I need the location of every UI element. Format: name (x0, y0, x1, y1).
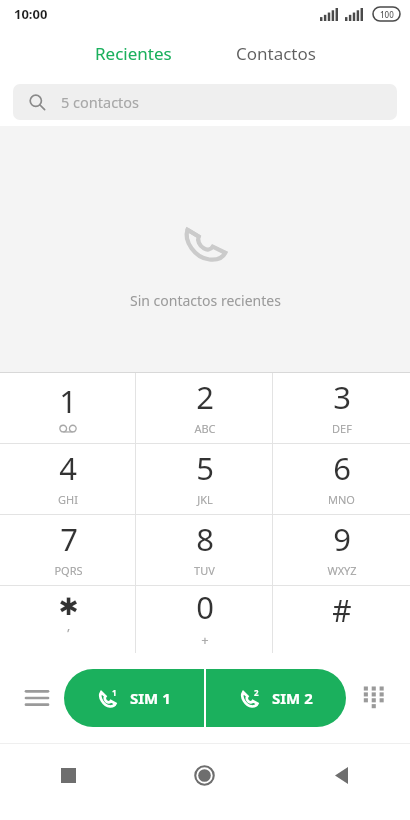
staticText: PQRS (54, 563, 83, 578)
staticText: 2 (196, 376, 214, 418)
staticText: 6 (333, 447, 351, 489)
button[interactable]: Contactos (218, 34, 334, 73)
staticText: 10:00 (14, 5, 48, 23)
staticText: 100 (380, 9, 394, 20)
button[interactable]: 1 (64, 669, 204, 727)
staticText: TUV (194, 563, 215, 578)
button[interactable]: Home (136, 744, 273, 806)
staticText: 5 contactos (61, 92, 140, 112)
staticText: 9 (333, 518, 351, 560)
button[interactable]: Menu (10, 671, 64, 725)
button[interactable]: 8 (136, 515, 273, 585)
staticText: 1 (59, 380, 77, 422)
staticText: 8 (196, 518, 214, 560)
staticText: ’ (67, 624, 70, 642)
button[interactable]: 3 (273, 373, 410, 443)
staticText: 0 (196, 586, 214, 628)
button[interactable]: 2 (206, 669, 346, 727)
button[interactable]: 1 (0, 373, 136, 443)
staticText: 2 (254, 687, 259, 698)
staticText: SIM 2 (272, 688, 313, 708)
button[interactable]: 0 (136, 586, 273, 653)
button[interactable]: 9 (273, 515, 410, 585)
button[interactable]: 2 (136, 373, 273, 443)
button[interactable]: 7 (0, 515, 136, 585)
button[interactable]: 4 (0, 444, 136, 514)
staticText: JKL (197, 492, 213, 507)
staticText: ABC (194, 421, 216, 436)
staticText: SIM 1 (130, 688, 171, 708)
staticText: 5 (196, 447, 214, 489)
staticText: DEF (332, 421, 352, 436)
staticText: 7 (60, 518, 78, 560)
staticText: Contactos (236, 42, 316, 65)
button[interactable]: 5 (136, 444, 273, 514)
button[interactable]: 6 (273, 444, 410, 514)
button[interactable]: 5 contactos (13, 84, 397, 120)
button[interactable]: ✱ (0, 586, 136, 653)
button[interactable]: Recientes (77, 34, 190, 73)
button[interactable]: Recents (0, 744, 136, 806)
staticText: 1 (112, 687, 117, 698)
staticText: # (332, 590, 352, 631)
staticText: GHI (58, 492, 78, 507)
button[interactable]: Keypad (346, 671, 400, 725)
button[interactable]: # (273, 586, 410, 653)
staticText: MNO (328, 492, 355, 507)
staticText: WXYZ (327, 563, 357, 578)
staticText: 4 (59, 447, 77, 489)
staticText: ✱ (58, 593, 79, 621)
staticText: Sin contactos recientes (130, 291, 281, 310)
staticText: + (201, 631, 209, 649)
staticText: Recientes (95, 42, 172, 65)
staticText: 3 (333, 376, 351, 418)
button[interactable]: Back (273, 744, 410, 806)
